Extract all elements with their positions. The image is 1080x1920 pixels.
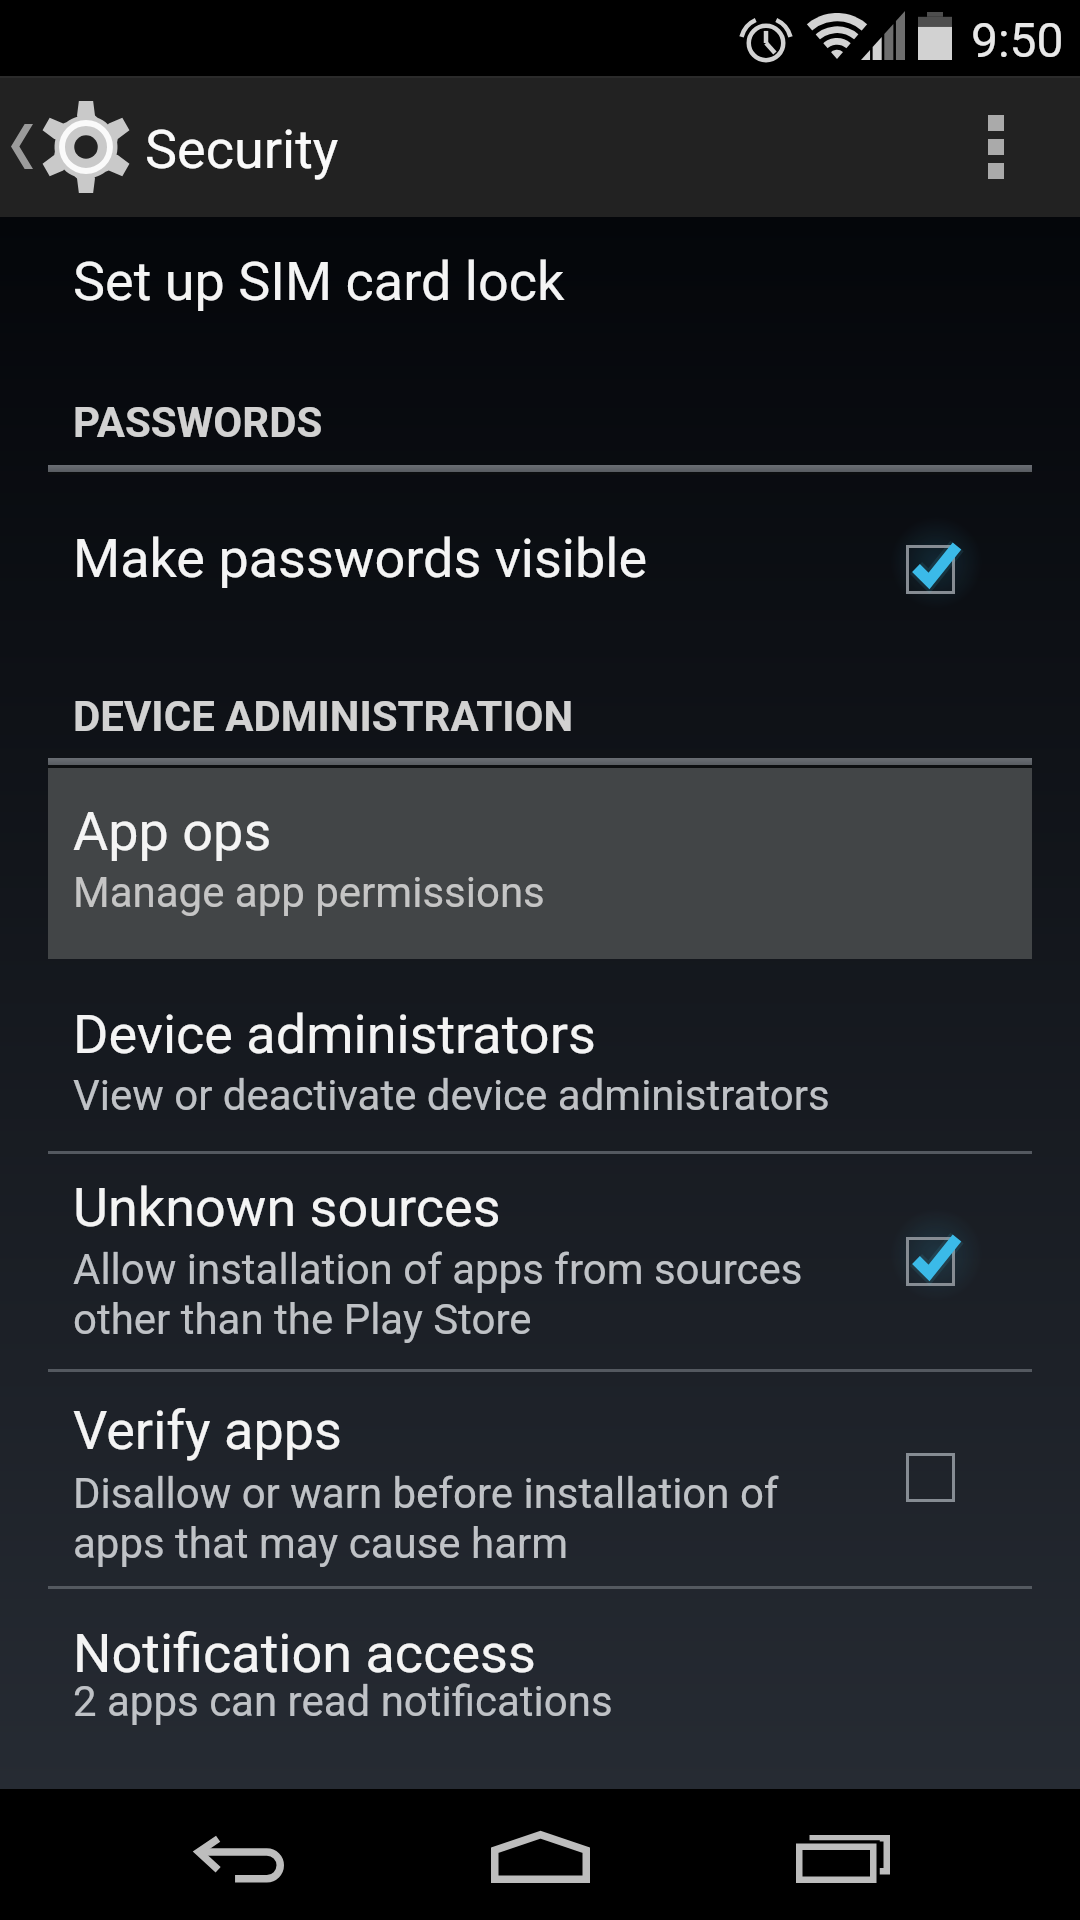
staticText: Manage app permissions: [73, 868, 545, 917]
staticText: Unknown sources: [73, 1176, 501, 1239]
button[interactable]: Checked: [876, 1201, 984, 1321]
staticText: Allow installation of apps from sources …: [73, 1244, 803, 1344]
button[interactable]: Navigate up — Security: [0, 76, 1080, 217]
staticText: Security: [145, 118, 339, 181]
button[interactable]: [0, 1153, 1080, 1369]
button[interactable]: [0, 1371, 1080, 1586]
staticText: Set up SIM card lock: [73, 250, 565, 313]
staticText: Disallow or warn before installation of …: [73, 1468, 779, 1568]
staticText: DEVICE ADMINISTRATION: [73, 692, 574, 741]
button[interactable]: Not checked: [876, 1417, 984, 1537]
button[interactable]: [0, 1588, 1080, 1790]
button[interactable]: Checked: [876, 509, 984, 629]
staticText: View or deactivate device administrators: [73, 1070, 830, 1120]
staticText: App ops: [73, 800, 272, 863]
staticText: Device administrators: [73, 1003, 596, 1066]
button[interactable]: More options: [968, 76, 1080, 217]
button[interactable]: Recent apps: [720, 1789, 1080, 1920]
staticText: Verify apps: [73, 1399, 342, 1462]
button[interactable]: [0, 470, 1080, 758]
staticText: 9:50: [971, 12, 1064, 68]
button[interactable]: Back: [0, 1789, 360, 1920]
button[interactable]: [0, 959, 1080, 1151]
staticText: Make passwords visible: [73, 527, 648, 590]
button[interactable]: [48, 766, 1032, 959]
button[interactable]: Home: [360, 1789, 720, 1920]
staticText: Notification access: [73, 1622, 536, 1685]
staticText: PASSWORDS: [73, 398, 323, 447]
staticText: 2 apps can read notifications: [73, 1676, 613, 1726]
button[interactable]: [0, 145, 1080, 464]
